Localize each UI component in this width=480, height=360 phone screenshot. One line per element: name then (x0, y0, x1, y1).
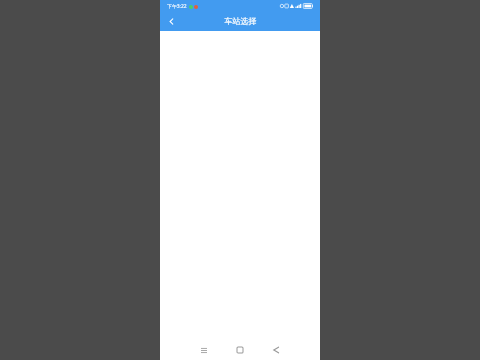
button[interactable]: Home (222, 336, 258, 360)
staticText: 下午3:22 (167, 3, 187, 10)
staticText: 车站选择 (224, 16, 257, 26)
button[interactable]: Back (163, 13, 179, 29)
button[interactable]: Back (258, 336, 294, 360)
button[interactable]: Recent apps (186, 336, 222, 360)
